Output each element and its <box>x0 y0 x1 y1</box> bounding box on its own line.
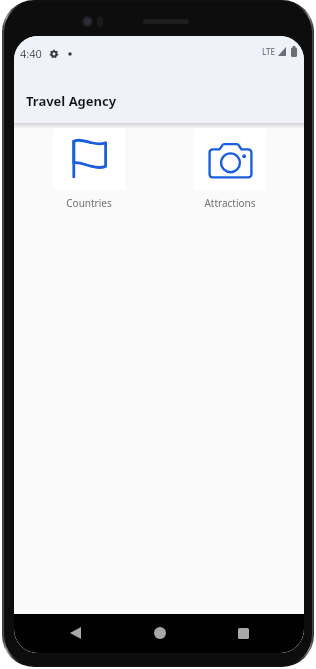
button[interactable]: Home <box>143 616 177 650</box>
button[interactable]: Back <box>58 616 92 650</box>
button[interactable]: Attractions <box>194 128 266 210</box>
staticText: Attractions <box>204 196 256 210</box>
button[interactable]: Countries <box>53 128 125 210</box>
staticText: LTE <box>262 46 276 57</box>
staticText: Travel Agency <box>26 92 117 110</box>
staticText: 4:40 <box>20 46 42 61</box>
button[interactable]: Recents <box>226 616 260 650</box>
staticText: Countries <box>66 196 112 210</box>
